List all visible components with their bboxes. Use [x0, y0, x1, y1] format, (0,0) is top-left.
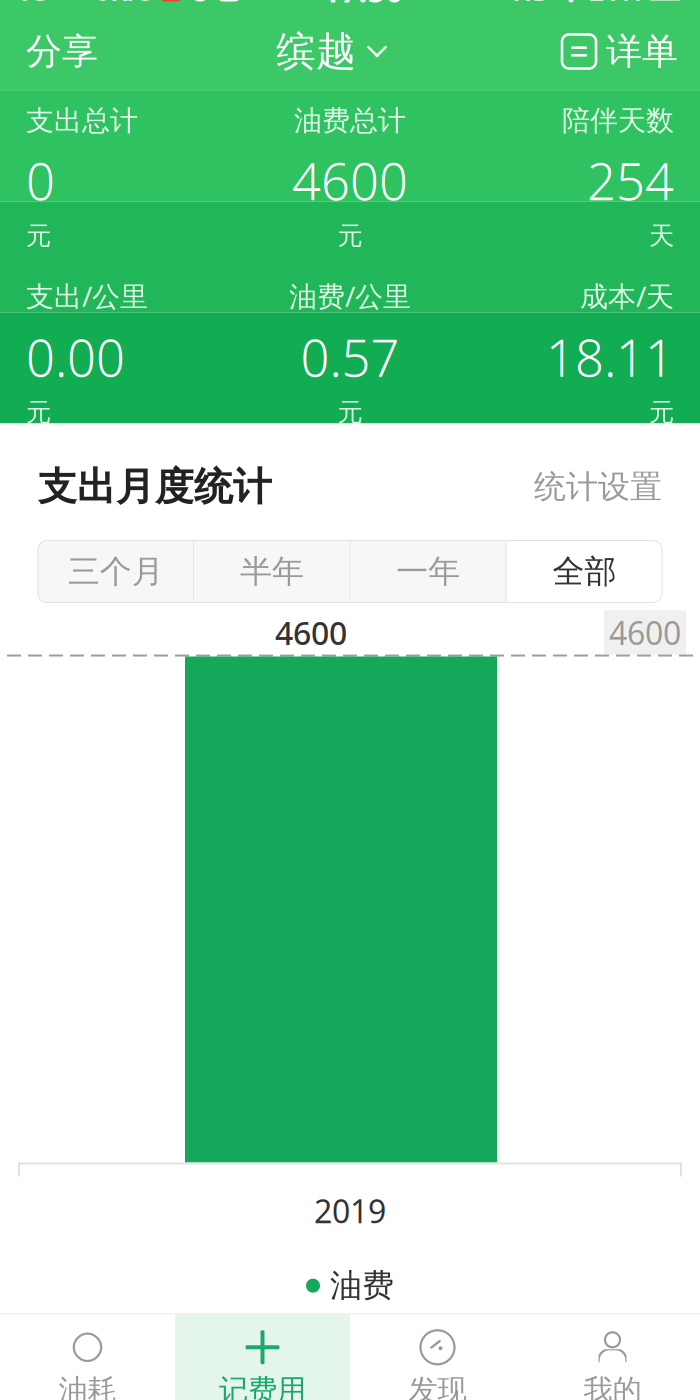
staticText: 元: [26, 220, 51, 251]
staticText: 详单: [606, 29, 678, 74]
staticText: 三个月: [68, 552, 164, 591]
button[interactable]: 缤越: [266, 17, 398, 86]
staticText: 2019: [314, 1189, 386, 1232]
staticText: 4600: [609, 611, 681, 654]
staticText: 元: [337, 220, 362, 251]
staticText: 全部: [552, 552, 616, 591]
staticText: 统计设置: [534, 467, 662, 506]
button[interactable]: 详单: [540, 19, 700, 84]
staticText: 一年: [396, 552, 460, 591]
staticText: 发现: [408, 1372, 466, 1400]
staticText: 支出月度统计: [38, 463, 272, 511]
button[interactable]: 我的: [525, 1315, 700, 1400]
staticText: 记费用: [219, 1372, 306, 1400]
staticText: 17:50: [322, 0, 403, 11]
staticText: 油费总计: [294, 103, 406, 138]
staticText: 4600: [275, 611, 347, 654]
staticText: 0K/s: [95, 0, 152, 8]
button[interactable]: 统计设置: [518, 461, 662, 512]
staticText: 半年: [240, 552, 304, 591]
staticText: 淘: [162, 0, 179, 1]
staticText: 元: [26, 397, 51, 428]
button[interactable]: 发现: [350, 1315, 525, 1400]
staticText: 元: [649, 397, 674, 428]
staticText: 0.57: [300, 323, 399, 391]
button[interactable]: 分享: [0, 17, 124, 86]
staticText: 0.00: [26, 323, 125, 391]
button[interactable]: 一年: [350, 540, 506, 602]
button[interactable]: 记费用: [175, 1315, 350, 1400]
staticText: 支出/公里: [26, 277, 148, 314]
staticText: 0: [26, 147, 55, 214]
staticText: 缤越: [276, 27, 356, 76]
staticText: 21%: [589, 0, 643, 8]
staticText: 我的: [583, 1372, 641, 1400]
staticText: 支出总计: [26, 103, 138, 138]
staticText: 元: [337, 397, 362, 428]
staticText: 4G+: [14, 0, 63, 8]
staticText: 天: [649, 220, 674, 251]
staticText: 18.11: [546, 323, 674, 391]
staticText: HD: [512, 0, 552, 8]
button[interactable]: 油耗: [0, 1315, 175, 1400]
button[interactable]: 半年: [194, 540, 349, 602]
staticText: 油费: [330, 1266, 394, 1305]
staticText: 4600: [292, 147, 408, 214]
button[interactable]: 全部: [507, 540, 662, 602]
staticText: 分享: [26, 29, 98, 74]
staticText: 油耗: [58, 1372, 116, 1400]
button[interactable]: 三个月: [38, 540, 193, 602]
staticText: 254: [587, 147, 674, 214]
staticText: 陪伴天数: [562, 103, 674, 138]
staticText: 油费/公里: [289, 277, 411, 314]
staticText: 成本/天: [580, 277, 674, 314]
